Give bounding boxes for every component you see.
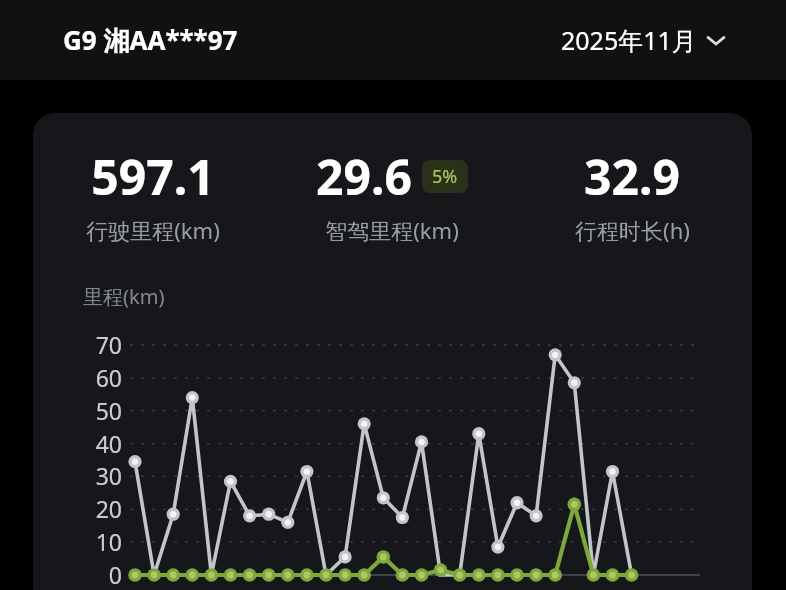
staticText: 里程(km)	[83, 283, 165, 310]
staticText: 5%	[432, 164, 458, 189]
other: Select month	[706, 30, 726, 50]
button[interactable]: 597.1	[33, 144, 272, 245]
staticText: 32.9	[584, 144, 680, 209]
button[interactable]: 29.6	[272, 144, 512, 245]
staticText: 智驾里程(km)	[325, 215, 459, 245]
staticText: 29.6	[316, 144, 412, 209]
staticText: 40	[60, 428, 122, 459]
staticText: 20	[60, 493, 122, 524]
button[interactable]: 2025年11月	[557, 15, 730, 65]
staticText: 2025年11月	[561, 23, 697, 57]
staticText: 60	[60, 362, 122, 393]
staticText: 70	[60, 329, 122, 360]
staticText: G9 湘AA***97	[63, 22, 238, 58]
staticText: 597.1	[91, 144, 215, 209]
staticText: 30	[60, 460, 122, 491]
staticText: 0	[60, 559, 122, 590]
button[interactable]: 32.9	[512, 144, 752, 245]
staticText: 行驶里程(km)	[86, 215, 220, 245]
staticText: 50	[60, 395, 122, 426]
staticText: 10	[60, 526, 122, 557]
staticText: 行程时长(h)	[575, 215, 690, 245]
